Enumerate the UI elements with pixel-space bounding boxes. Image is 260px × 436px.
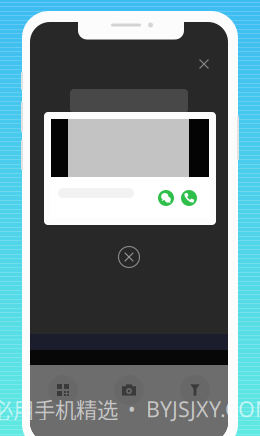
staticText: BYJSJXY.COM: [146, 394, 260, 424]
button[interactable]: Dismiss: [114, 242, 144, 272]
button[interactable]: Share to WeChat: [156, 188, 176, 208]
staticText: 必用手机精选: [0, 394, 118, 424]
button[interactable]: Camera: [96, 373, 162, 407]
button[interactable]: Share to Moments: [179, 188, 199, 208]
staticText: •: [118, 395, 146, 423]
button[interactable]: Close: [191, 51, 217, 77]
button[interactable]: Scan QR code: [30, 373, 96, 407]
button[interactable]: Flashlight: [162, 373, 228, 407]
